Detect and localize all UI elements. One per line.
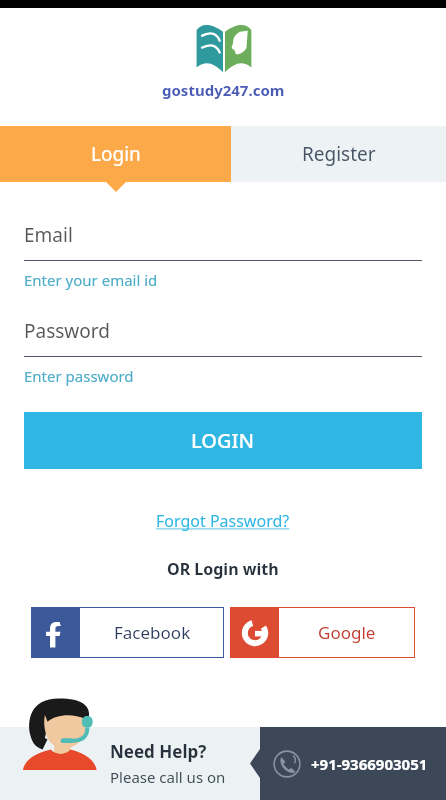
staticText: +91-9366903051 <box>311 754 428 774</box>
staticText: Email <box>24 222 73 248</box>
staticText: OR Login with <box>167 558 279 580</box>
button[interactable]: Forgot Password? <box>152 506 294 536</box>
staticText: Register <box>302 141 376 167</box>
staticText: Password <box>24 318 110 344</box>
staticText: gostudy247.com <box>162 80 285 100</box>
button[interactable]: Call +91-9366903051 <box>250 727 446 800</box>
staticText: Enter your email id <box>24 270 158 290</box>
staticText: Google <box>318 621 376 644</box>
staticText: Login <box>91 141 141 167</box>
button[interactable]: Facebook <box>31 607 224 658</box>
staticText: Please call us on <box>110 767 226 787</box>
staticText: Forgot Password? <box>156 510 290 532</box>
button[interactable]: Register <box>231 126 446 182</box>
staticText: LOGIN <box>191 427 255 454</box>
staticText: Facebook <box>114 621 191 644</box>
staticText: Need Help? <box>110 740 207 763</box>
button[interactable]: LOGIN <box>24 412 422 469</box>
button[interactable]: Google <box>230 607 415 658</box>
staticText: Enter password <box>24 366 134 386</box>
button[interactable]: Login <box>0 126 231 182</box>
